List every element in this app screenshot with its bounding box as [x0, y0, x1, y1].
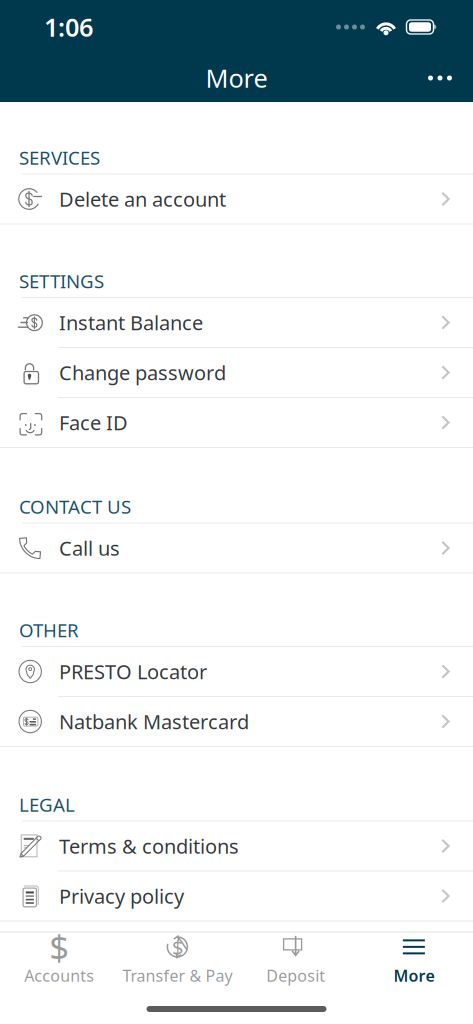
button[interactable]: PRESTO Locator	[0, 647, 473, 696]
staticText: More	[205, 61, 267, 95]
button[interactable]: Privacy policy	[0, 871, 473, 920]
staticText: SETTINGS	[19, 269, 104, 293]
button[interactable]: Change password	[0, 348, 473, 397]
staticText: Face ID	[59, 409, 128, 436]
staticText: $	[172, 934, 183, 960]
button[interactable]: More	[355, 932, 473, 986]
staticText: Change password	[59, 359, 226, 386]
button[interactable]: $	[118, 932, 236, 986]
button[interactable]: $	[0, 932, 118, 986]
staticText: Terms & conditions	[59, 833, 239, 859]
button[interactable]: Delete an account	[0, 174, 473, 223]
button[interactable]: Face ID	[0, 398, 473, 447]
staticText: $	[49, 924, 69, 970]
staticText: PRESTO Locator	[59, 658, 207, 685]
staticText: Privacy policy	[59, 883, 184, 909]
staticText: OTHER	[19, 618, 79, 642]
staticText: 1:06	[44, 10, 93, 44]
button[interactable]: Call us	[0, 523, 473, 572]
staticText: Natbank Mastercard	[59, 708, 249, 735]
staticText: Accounts	[24, 965, 94, 986]
staticText: Call us	[59, 535, 120, 561]
staticText: SERVICES	[19, 145, 100, 170]
staticText: Deposit	[266, 965, 325, 986]
staticText: More	[393, 965, 434, 986]
button[interactable]: Terms & conditions	[0, 821, 473, 870]
staticText: LEGAL	[19, 792, 75, 817]
button[interactable]: Instant Balance	[0, 298, 473, 347]
button[interactable]: Deposit	[236, 932, 355, 986]
button[interactable]: More options	[415, 56, 465, 100]
staticText: Transfer & Pay	[122, 965, 232, 986]
staticText: CONTACT US	[19, 494, 131, 519]
staticText: Delete an account	[59, 186, 226, 212]
staticText: Instant Balance	[59, 309, 203, 336]
button[interactable]: Natbank Mastercard	[0, 697, 473, 746]
